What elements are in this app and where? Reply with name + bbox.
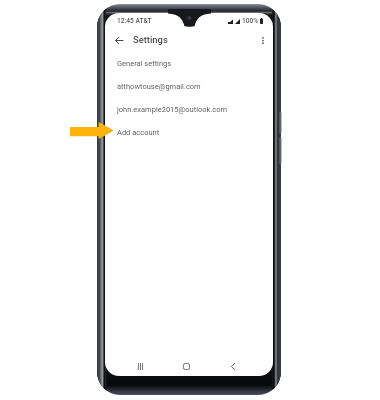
button[interactable]: Back xyxy=(109,31,128,50)
staticText: Add account xyxy=(117,128,160,137)
button[interactable]: Recent apps xyxy=(126,355,154,376)
button[interactable]: john.example2015@outlook.com xyxy=(105,98,273,121)
staticText: john.example2015@outlook.com xyxy=(117,105,228,114)
staticText: 12:45 AT&T xyxy=(117,17,152,25)
button[interactable]: Back xyxy=(219,355,247,376)
staticText: atthowtouse@gmail.com xyxy=(117,82,201,91)
button[interactable]: Home xyxy=(172,355,200,376)
button[interactable]: General settings xyxy=(105,52,273,75)
staticText: General settings xyxy=(117,59,172,68)
button[interactable]: More options xyxy=(253,31,272,50)
staticText: 100% xyxy=(242,17,259,25)
staticText: Settings xyxy=(133,34,168,45)
button[interactable]: atthowtouse@gmail.com xyxy=(105,75,273,98)
button[interactable]: Add account xyxy=(105,121,273,144)
